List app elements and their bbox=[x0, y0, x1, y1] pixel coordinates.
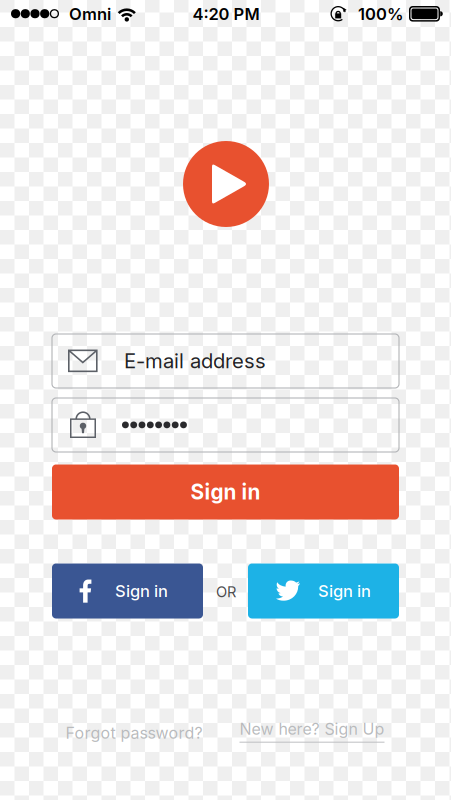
button[interactable]: Forgot password? bbox=[65, 723, 202, 743]
staticText: New here? Sign Up bbox=[239, 719, 384, 739]
staticText: Sign in bbox=[190, 479, 260, 505]
staticText: Sign in bbox=[115, 581, 168, 601]
button[interactable]: E-mail address bbox=[52, 334, 399, 388]
staticText: 4:20 PM bbox=[192, 4, 259, 24]
button[interactable]: Sign in bbox=[52, 563, 203, 618]
staticText: 100% bbox=[358, 4, 404, 24]
button[interactable]: Sign in bbox=[52, 464, 399, 519]
staticText: Omni bbox=[69, 4, 111, 24]
staticText: Sign in bbox=[318, 581, 371, 601]
button[interactable] bbox=[52, 398, 399, 452]
button[interactable]: New here? Sign Up bbox=[239, 719, 384, 743]
staticText: E-mail address bbox=[124, 349, 266, 373]
staticText: OR bbox=[216, 583, 236, 601]
button[interactable]: Sign in bbox=[248, 563, 399, 618]
staticText: Forgot password? bbox=[65, 723, 202, 743]
